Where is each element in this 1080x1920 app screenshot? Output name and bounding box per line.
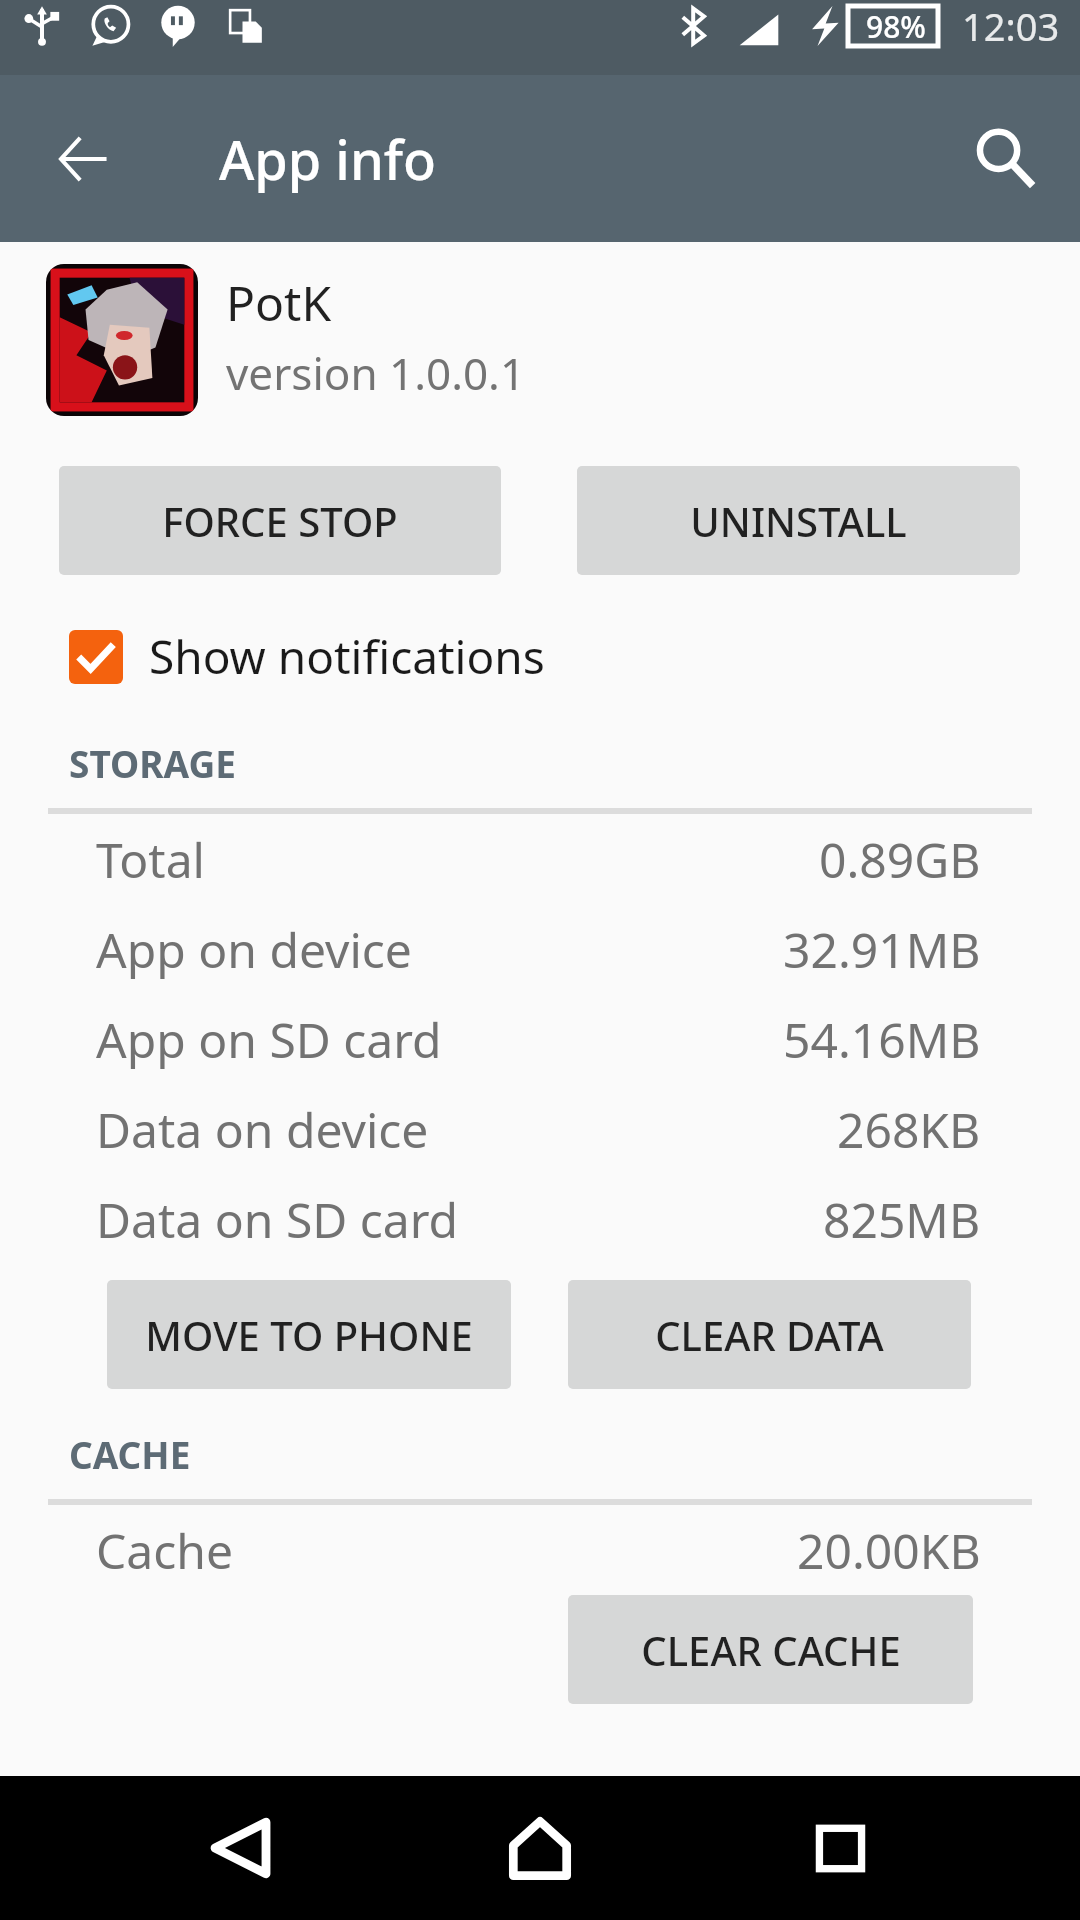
button[interactable]: App on SD card — [0, 994, 1080, 1084]
button[interactable]: MOVE TO PHONE — [107, 1280, 511, 1389]
button[interactable]: FORCE STOP — [59, 466, 501, 575]
button[interactable]: App on device — [0, 904, 1080, 994]
button[interactable]: Recents — [780, 1788, 900, 1908]
staticText: Total — [96, 827, 206, 892]
staticText: 0.89GB — [819, 827, 981, 892]
staticText: Show notifications — [149, 625, 545, 688]
button[interactable]: Back — [38, 113, 130, 205]
button[interactable]: CLEAR DATA — [568, 1280, 971, 1389]
button[interactable]: Search — [960, 113, 1052, 205]
button[interactable]: Cache — [0, 1505, 1080, 1595]
staticText: PotK — [226, 270, 332, 335]
staticText: MOVE TO PHONE — [145, 1308, 473, 1362]
button[interactable]: Data on device — [0, 1084, 1080, 1174]
staticText: CLEAR DATA — [655, 1308, 884, 1362]
staticText: 825MB — [823, 1187, 981, 1252]
staticText: FORCE STOP — [162, 494, 398, 548]
button[interactable]: Home — [480, 1788, 600, 1908]
staticText: version 1.0.0.1 — [226, 343, 526, 403]
staticText: 54.16MB — [783, 1007, 981, 1072]
staticText: Cache — [96, 1518, 234, 1583]
staticText: App on SD card — [96, 1007, 442, 1072]
button[interactable]: UNINSTALL — [577, 466, 1020, 575]
staticText: Data on device — [96, 1097, 429, 1162]
staticText: 12:03 — [962, 0, 1060, 52]
staticText: UNINSTALL — [690, 494, 907, 548]
button[interactable]: Back — [180, 1788, 300, 1908]
staticText: 268KB — [837, 1097, 981, 1162]
staticText: CACHE — [69, 1429, 191, 1479]
staticText: CLEAR CACHE — [641, 1623, 901, 1677]
staticText: Data on SD card — [96, 1187, 459, 1252]
staticText: App info — [219, 122, 437, 196]
staticText: 32.91MB — [783, 917, 981, 982]
staticText: App on device — [96, 917, 412, 982]
button[interactable]: Data on SD card — [0, 1174, 1080, 1264]
button[interactable]: Show notifications — [0, 625, 1080, 688]
staticText: 20.00KB — [797, 1518, 981, 1583]
button[interactable]: Total — [0, 814, 1080, 904]
button[interactable]: CLEAR CACHE — [568, 1595, 973, 1704]
staticText: STORAGE — [69, 738, 236, 788]
staticText: 98% — [866, 6, 926, 47]
